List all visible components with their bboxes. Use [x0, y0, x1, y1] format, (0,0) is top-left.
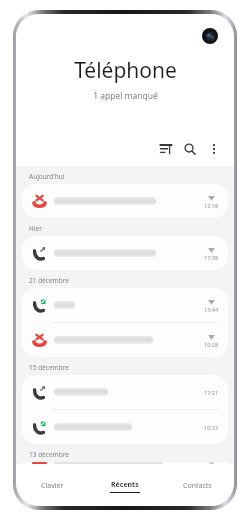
staticText: 13:44: [204, 306, 219, 313]
button[interactable]: 10:28: [22, 323, 228, 357]
button[interactable]: More options: [202, 137, 226, 161]
staticText: 15 décembre: [29, 363, 69, 372]
staticText: Contacts: [183, 481, 212, 491]
button[interactable]: 17:21: [22, 375, 228, 409]
staticText: 10:28: [204, 341, 219, 348]
button[interactable]: 12:18: [22, 184, 228, 218]
staticText: Récents: [111, 480, 139, 490]
staticText: Hier: [29, 224, 42, 233]
staticText: Clavier: [41, 481, 64, 491]
button[interactable]: 10:33: [22, 410, 228, 444]
button[interactable]: 10:11: [22, 462, 228, 464]
button[interactable]: Contacts: [161, 466, 234, 506]
button[interactable]: Clavier: [16, 466, 88, 506]
button[interactable]: Search: [178, 137, 202, 161]
staticText: 17:21: [204, 389, 219, 396]
button[interactable]: Sort: [154, 137, 178, 161]
staticText: 21 décembre: [29, 276, 69, 285]
staticText: 13 décembre: [29, 450, 69, 459]
staticText: 17:38: [204, 254, 219, 261]
staticText: Téléphone: [74, 56, 177, 85]
button[interactable]: 17:38: [22, 236, 228, 270]
staticText: 12:18: [204, 202, 219, 209]
button[interactable]: 13:44: [22, 288, 228, 322]
staticText: Aujourd'hui: [29, 172, 65, 181]
staticText: 1 appel manqué: [93, 90, 158, 102]
button[interactable]: Récents: [88, 466, 161, 506]
staticText: 10:33: [204, 424, 219, 431]
